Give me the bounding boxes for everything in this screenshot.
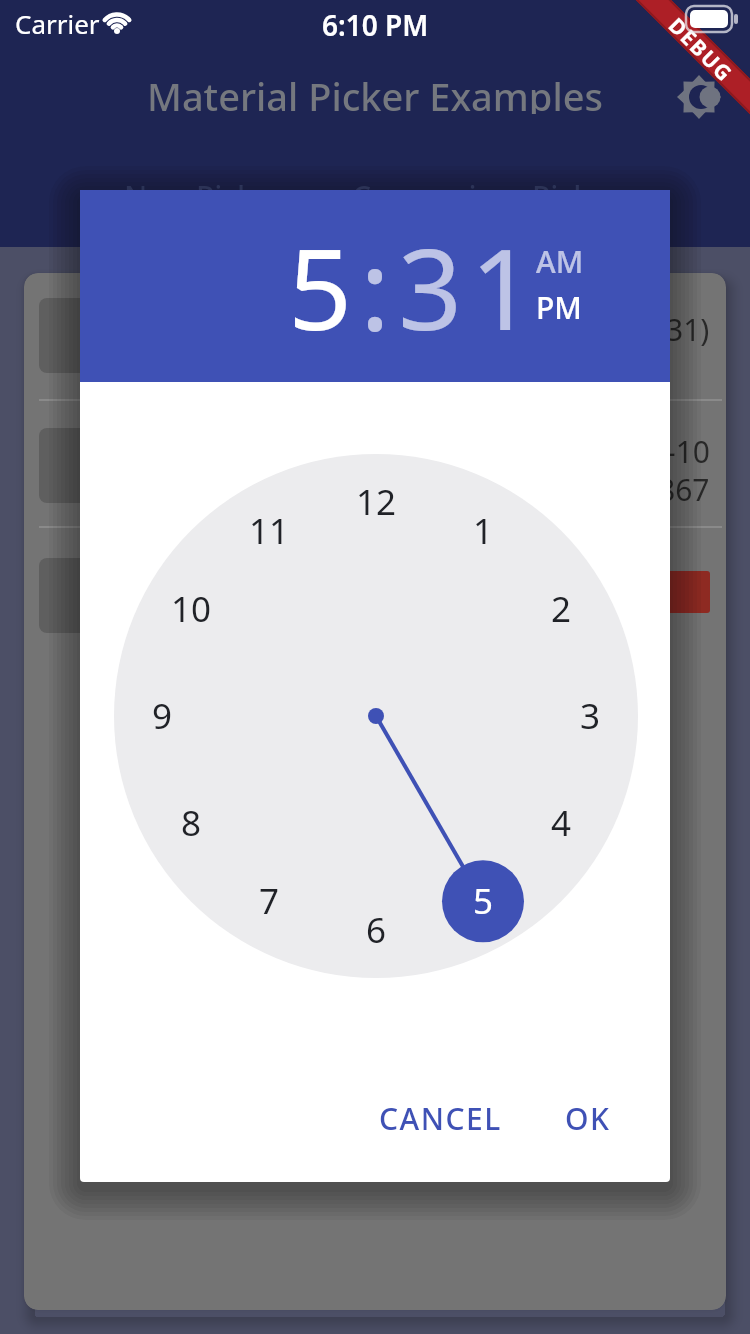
button[interactable]: 10 [151, 579, 231, 639]
button[interactable]: 3 [550, 686, 630, 746]
staticText: 10 [171, 585, 212, 633]
button[interactable] [24, 273, 726, 399]
button[interactable]: PM [536, 284, 606, 330]
staticText: 6:10 PM [322, 6, 429, 38]
staticText: 5 [473, 877, 494, 925]
button[interactable]: 9 [122, 686, 202, 746]
button[interactable]: OK [528, 1088, 648, 1148]
button[interactable]: 7 [229, 871, 309, 931]
button[interactable]: 1 [443, 501, 523, 561]
staticText: 2 [551, 585, 572, 633]
button[interactable]: Pickers [532, 176, 635, 217]
staticText: 1 [473, 507, 494, 555]
staticText: -10 [666, 431, 710, 471]
button[interactable] [24, 401, 726, 526]
button[interactable]: AM [536, 238, 606, 284]
staticText: Material Picker Examples [147, 70, 603, 114]
button[interactable]: CANCEL [355, 1088, 525, 1148]
staticText: CANCEL [379, 1098, 502, 1139]
staticText: Carrier [15, 6, 100, 41]
staticText: 5:31 [288, 210, 543, 363]
staticText: 8 [181, 799, 202, 847]
staticText: 867 [658, 469, 710, 509]
button[interactable] [560, 571, 710, 613]
staticText: PM [536, 287, 582, 328]
staticText: DEBUG [665, 11, 739, 86]
staticText: (31) [657, 309, 710, 350]
staticText: Pickers [532, 176, 635, 217]
staticText: 11 [249, 507, 290, 555]
staticText: 3 [580, 692, 601, 740]
button[interactable]: 4 [521, 793, 601, 853]
button[interactable]: New Pickers [124, 176, 299, 217]
button[interactable]: 6 [336, 900, 416, 960]
button[interactable] [671, 69, 727, 125]
button[interactable] [24, 528, 726, 658]
button[interactable]: 5 [443, 871, 523, 931]
staticText: 12 [356, 478, 397, 526]
button[interactable]: 11 [229, 501, 309, 561]
button[interactable]: 12 [336, 472, 416, 532]
staticText: 7 [259, 877, 280, 925]
button[interactable]: 8 [151, 793, 231, 853]
staticText: 6 [366, 906, 387, 954]
button[interactable]: Conversions [352, 176, 529, 217]
staticText: AM [536, 241, 584, 282]
staticText: 4 [551, 799, 572, 847]
staticText: OK [565, 1098, 611, 1139]
button[interactable]: 2 [521, 579, 601, 639]
staticText: New Pickers [124, 176, 299, 217]
staticText: 9 [152, 692, 173, 740]
staticText: Conversions [352, 176, 529, 217]
